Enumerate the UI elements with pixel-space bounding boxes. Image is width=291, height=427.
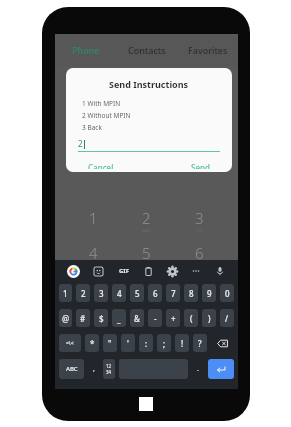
staticText: Send Instructions (109, 78, 189, 90)
staticText: + (171, 313, 176, 324)
button[interactable]: # (76, 309, 90, 327)
staticText: 2 (142, 208, 151, 228)
button[interactable]: More (184, 260, 208, 282)
staticText: # (80, 313, 86, 324)
staticText: Contacts (128, 44, 166, 56)
button[interactable]: Google (61, 260, 86, 282)
staticText: ; (163, 338, 166, 349)
button[interactable]: 5 (130, 284, 144, 302)
button[interactable]: $ (94, 309, 108, 327)
button[interactable]: Settings (160, 260, 184, 282)
staticText: $ (99, 313, 104, 324)
staticText: 3 (195, 208, 204, 228)
button[interactable]: 4 (112, 284, 126, 302)
staticText: - (154, 313, 157, 324)
staticText: ABC (143, 228, 151, 233)
button[interactable]: . (192, 359, 204, 379)
button[interactable]: Contacts (116, 34, 177, 66)
button[interactable]: 5 (120, 243, 173, 268)
staticText: 6 (153, 288, 158, 299)
staticText: ! (181, 338, 184, 349)
button[interactable]: Stickers (86, 260, 111, 282)
staticText: ' (127, 338, 129, 349)
button[interactable]: : (139, 334, 153, 352)
button[interactable]: Numbers (103, 359, 115, 379)
button[interactable]: 6 (173, 243, 226, 268)
button[interactable]: / (220, 309, 234, 327)
staticText: ABC (66, 365, 78, 373)
staticText: Favorites (188, 44, 228, 56)
button[interactable]: 2 (76, 284, 90, 302)
staticText: 8 (189, 288, 194, 299)
staticText: 1 (63, 288, 68, 299)
staticText: ( (190, 313, 193, 324)
staticText: . (197, 364, 199, 374)
button[interactable]: , (88, 359, 99, 379)
button[interactable]: 2 (120, 208, 173, 233)
button[interactable]: " (103, 334, 117, 352)
staticText: DEF (196, 228, 204, 233)
button[interactable]: ABC (59, 359, 84, 379)
staticText: : (145, 338, 148, 349)
staticText: 2 (78, 138, 83, 149)
button[interactable]: ? (193, 334, 207, 352)
button[interactable]: - (148, 309, 162, 327)
staticText: GIF (119, 267, 129, 275)
button[interactable]: 8 (184, 284, 198, 302)
button[interactable]: Send (181, 159, 220, 172)
button[interactable]: ; (157, 334, 171, 352)
staticText: @ (62, 313, 70, 324)
button[interactable]: Clipboard (136, 260, 160, 282)
button[interactable]: GIF (111, 260, 136, 282)
staticText: 7 (171, 288, 176, 299)
button[interactable]: 6 (148, 284, 162, 302)
button[interactable]: _ (112, 309, 126, 327)
staticText: _ (117, 313, 121, 324)
button[interactable]: 1 (59, 284, 72, 302)
staticText: 1 With MPIN (82, 99, 121, 108)
button[interactable]: 3 (173, 208, 226, 233)
button[interactable]: Voice input (208, 260, 232, 282)
staticText: Phone (72, 44, 100, 56)
staticText: 3 Back (82, 123, 102, 132)
button[interactable]: 9 (202, 284, 216, 302)
button[interactable]: ' (121, 334, 135, 352)
button[interactable]: Cancel (78, 159, 124, 172)
button[interactable]: @ (59, 309, 72, 327)
staticText: Send (191, 162, 210, 169)
staticText: ) (208, 313, 211, 324)
button[interactable]: + (166, 309, 180, 327)
staticText: & (134, 313, 140, 324)
button[interactable]: Backspace (211, 334, 234, 352)
button[interactable]: 7 (166, 284, 180, 302)
staticText: 4 (89, 243, 98, 263)
button[interactable]: ! (175, 334, 189, 352)
button[interactable]: Favorites (177, 34, 238, 66)
staticText: 2 (81, 288, 86, 299)
staticText: " (108, 338, 112, 349)
staticText: =\< (66, 340, 74, 347)
staticText: , (93, 364, 95, 374)
staticText: 34 (106, 369, 112, 375)
staticText: JKL (144, 263, 150, 268)
button[interactable]: ) (202, 309, 216, 327)
button[interactable]: =\< (59, 334, 81, 352)
staticText: 9 (207, 288, 212, 299)
staticText: / (225, 313, 229, 324)
button[interactable]: & (130, 309, 144, 327)
button[interactable]: 0 (220, 284, 234, 302)
staticText: Cancel (88, 162, 114, 169)
button[interactable]: 3 (94, 284, 108, 302)
staticText: ? (198, 338, 202, 349)
button[interactable]: * (85, 334, 99, 352)
staticText: 12 (106, 363, 112, 369)
button[interactable]: 1 (67, 208, 120, 228)
button[interactable]: Enter (208, 359, 234, 379)
button[interactable]: ( (184, 309, 198, 327)
button[interactable]: 4 (67, 243, 120, 268)
staticText: GHI (90, 263, 98, 268)
button[interactable]: Phone (55, 34, 116, 66)
